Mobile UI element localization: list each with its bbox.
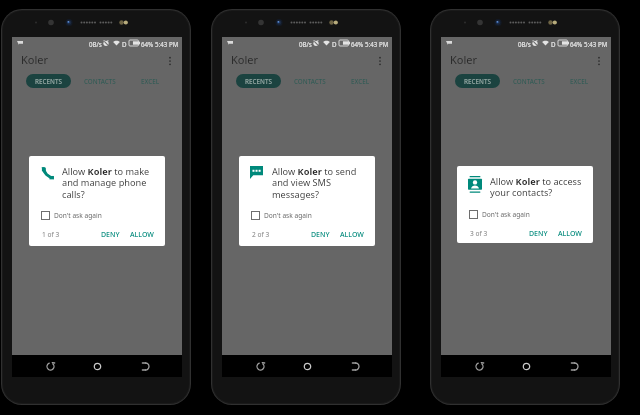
button[interactable]: DENY xyxy=(98,228,123,242)
button[interactable]: ALLOW xyxy=(555,227,585,241)
staticText: EXCEL xyxy=(141,77,160,86)
button[interactable]: DENY xyxy=(308,228,333,242)
staticText: RECENTS xyxy=(35,77,62,86)
button[interactable]: Back xyxy=(135,356,155,376)
button[interactable]: CONTACTS xyxy=(78,74,122,88)
button[interactable]: Home xyxy=(516,356,536,376)
staticText: ALLOW xyxy=(340,230,364,240)
staticText: ALLOW xyxy=(130,230,154,240)
staticText: D xyxy=(551,40,556,48)
button[interactable]: EXCEL xyxy=(134,74,166,88)
staticText: 0B/s xyxy=(299,40,312,48)
button[interactable]: CONTACTS xyxy=(507,74,551,88)
button[interactable]: Back xyxy=(345,356,365,376)
staticText: Allow Koler to make and manage phone cal… xyxy=(62,165,157,201)
button[interactable]: ALLOW xyxy=(127,228,157,242)
button[interactable]: More options xyxy=(372,53,388,69)
staticText: 64% xyxy=(141,40,154,48)
staticText: Koler xyxy=(21,52,49,67)
staticText: CONTACTS xyxy=(294,77,326,86)
staticText: DENY xyxy=(101,230,120,240)
staticText: EXCEL xyxy=(570,77,589,86)
staticText: RECENTS xyxy=(464,77,491,86)
staticText: CONTACTS xyxy=(513,77,545,86)
staticText: 0B/s xyxy=(518,40,531,48)
button[interactable]: Recent apps xyxy=(469,356,489,376)
staticText: ALLOW xyxy=(558,229,582,239)
staticText: D xyxy=(122,40,127,48)
button[interactable]: EXCEL xyxy=(344,74,376,88)
button[interactable]: Home xyxy=(87,356,107,376)
staticText: 3 of 3 xyxy=(470,229,488,238)
staticText: Allow Koler to send and view SMS message… xyxy=(272,165,367,201)
staticText: DENY xyxy=(311,230,330,240)
button[interactable]: EXCEL xyxy=(563,74,595,88)
staticText: Don't ask again xyxy=(54,211,102,220)
staticText: DENY xyxy=(529,229,548,239)
staticText: 0B/s xyxy=(89,40,102,48)
staticText: RECENTS xyxy=(245,77,272,86)
button[interactable]: More options xyxy=(591,53,607,69)
button[interactable]: DENY xyxy=(526,227,551,241)
staticText: 5:43 PM xyxy=(584,40,608,48)
button[interactable]: More options xyxy=(162,53,178,69)
button[interactable]: ALLOW xyxy=(337,228,367,242)
staticText: Koler xyxy=(231,52,259,67)
staticText: CONTACTS xyxy=(84,77,116,86)
button[interactable]: Back xyxy=(564,356,584,376)
button[interactable]: Home xyxy=(297,356,317,376)
button[interactable]: CONTACTS xyxy=(288,74,332,88)
staticText: 5:43 PM xyxy=(155,40,179,48)
staticText: Don't ask again xyxy=(264,211,312,220)
staticText: D xyxy=(332,40,337,48)
button[interactable]: Don't ask again xyxy=(467,208,532,221)
button[interactable]: RECENTS xyxy=(236,74,281,88)
staticText: 64% xyxy=(351,40,364,48)
staticText: Allow Koler to access your contacts? xyxy=(490,175,585,199)
button[interactable]: RECENTS xyxy=(455,74,500,88)
staticText: 2 of 3 xyxy=(252,230,270,239)
staticText: Don't ask again xyxy=(482,210,530,219)
button[interactable]: Recent apps xyxy=(40,356,60,376)
staticText: EXCEL xyxy=(351,77,370,86)
button[interactable]: RECENTS xyxy=(26,74,71,88)
staticText: 5:43 PM xyxy=(365,40,389,48)
button[interactable]: Don't ask again xyxy=(249,209,314,222)
staticText: 64% xyxy=(570,40,583,48)
button[interactable]: Recent apps xyxy=(250,356,270,376)
staticText: 1 of 3 xyxy=(42,230,60,239)
button[interactable]: Don't ask again xyxy=(39,209,104,222)
staticText: Koler xyxy=(450,52,478,67)
